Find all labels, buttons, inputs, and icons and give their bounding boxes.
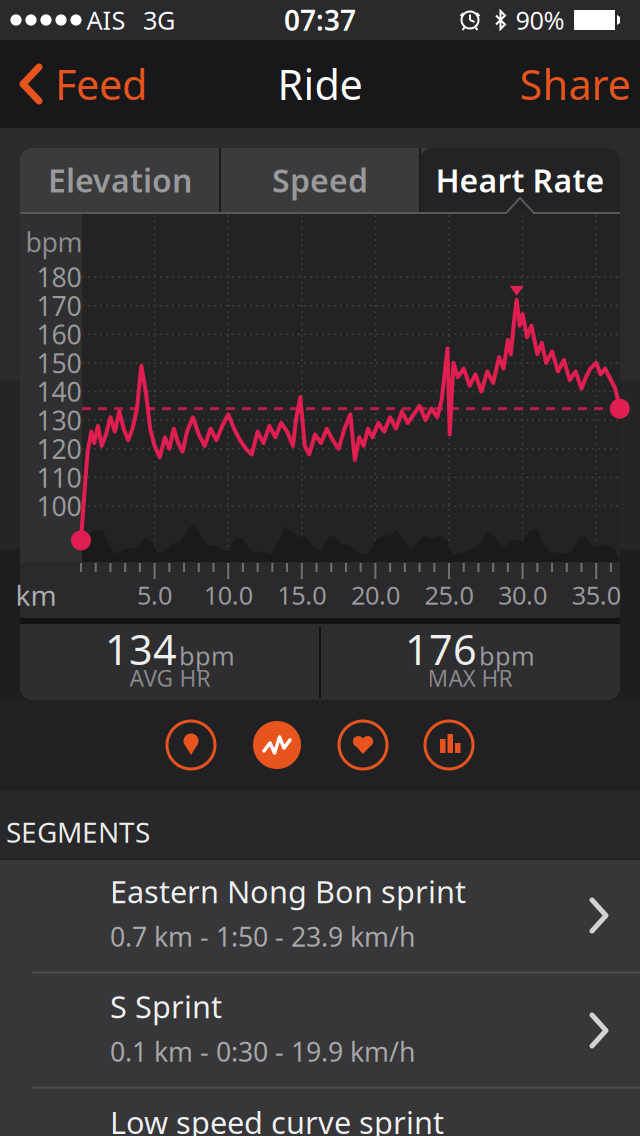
staticText: 0.1 km - 0:30 - 19.9 km/h: [110, 1034, 415, 1069]
staticText: Eastern Nong Bon sprint: [110, 871, 466, 912]
staticText: 35.0: [572, 578, 621, 612]
button[interactable]: Elevation: [21, 148, 219, 212]
staticText: 20.0: [351, 578, 400, 612]
staticText: Low speed curve sprint: [110, 1102, 444, 1136]
staticText: SEGMENTS: [6, 813, 150, 851]
staticText: 30.0: [498, 578, 547, 612]
staticText: 07:37: [284, 1, 356, 39]
button[interactable]: Speed: [221, 148, 419, 212]
staticText: 5.0: [137, 578, 172, 612]
staticText: AVG HR: [129, 663, 210, 693]
staticText: 25.0: [424, 578, 473, 612]
staticText: Share: [519, 57, 630, 111]
staticText: Ride: [277, 57, 362, 111]
staticText: 140: [36, 374, 81, 409]
staticText: 15.0: [277, 578, 326, 612]
staticText: 0.7 km - 1:50 - 23.9 km/h: [110, 919, 415, 954]
button[interactable]: Low speed curve sprint: [0, 1099, 640, 1136]
button[interactable]: Analysis: [425, 721, 473, 769]
staticText: bpm: [25, 224, 82, 260]
staticText: 110: [36, 460, 81, 495]
staticText: 90%: [515, 3, 564, 37]
staticText: km: [15, 576, 56, 614]
staticText: 160: [36, 316, 81, 352]
button[interactable]: Map: [167, 721, 215, 769]
button[interactable]: Eastern Nong Bon sprint: [0, 858, 640, 973]
staticText: 120: [36, 431, 81, 466]
button[interactable]: Share: [519, 54, 630, 114]
staticText: Elevation: [48, 159, 192, 201]
button[interactable]: Heart rate: [253, 721, 301, 769]
staticText: Speed: [272, 159, 368, 201]
staticText: bpm: [179, 639, 235, 672]
button[interactable]: Heart: [339, 721, 387, 769]
staticText: 134: [105, 622, 177, 676]
staticText: 176: [405, 622, 477, 676]
button[interactable]: Heart Rate: [420, 148, 620, 212]
staticText: S Sprint: [110, 986, 222, 1027]
staticText: 170: [36, 288, 81, 323]
staticText: 150: [36, 345, 81, 381]
staticText: 130: [36, 402, 81, 438]
button[interactable]: S Sprint: [0, 973, 640, 1088]
staticText: MAX HR: [427, 663, 512, 693]
staticText: Feed: [55, 57, 147, 111]
staticText: 100: [36, 488, 81, 524]
staticText: 10.0: [204, 578, 253, 612]
button[interactable]: Feed: [9, 54, 147, 114]
staticText: Heart Rate: [435, 159, 604, 201]
staticText: AIS: [86, 3, 125, 37]
staticText: 180: [36, 259, 81, 295]
staticText: bpm: [479, 639, 535, 672]
staticText: 3G: [143, 3, 175, 37]
